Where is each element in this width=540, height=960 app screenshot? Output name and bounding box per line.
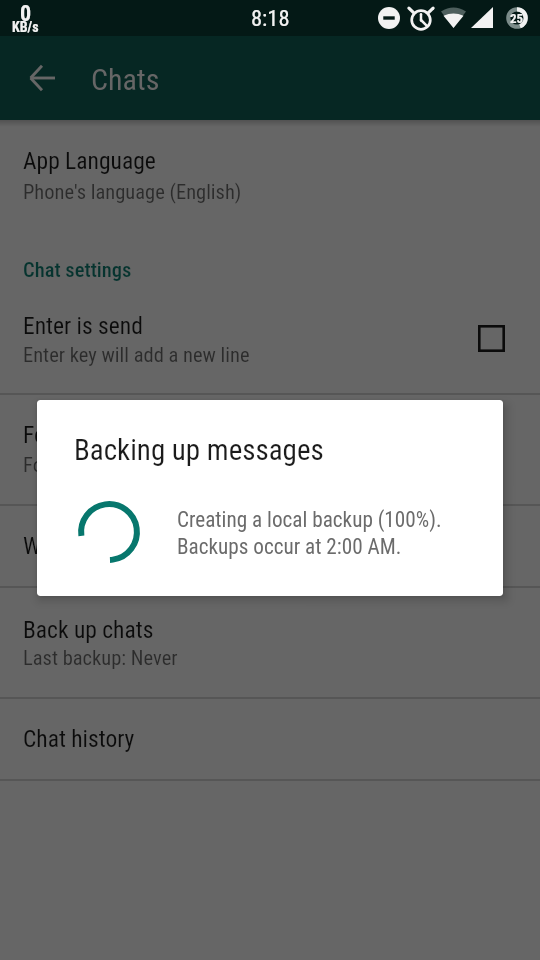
staticText: Backups occur at 2:00 AM. [177,534,402,559]
staticText: Fonts: Medium [23,453,144,477]
staticText: App Language [23,147,156,175]
staticText: Chats [91,62,160,97]
staticText: 0 [20,1,32,27]
staticText: 8:18 [251,5,290,31]
staticText: Backing up messages [74,433,324,467]
button[interactable]: App Language [0,120,540,220]
staticText: Phone's language (English) [23,180,242,204]
staticText: Chat history [23,725,135,753]
staticText: Enter is send [23,312,143,340]
button[interactable]: Back up chats [0,587,540,697]
staticText: Creating a local backup (100%). [177,507,442,532]
button[interactable]: Font size [0,394,540,504]
button[interactable]: Chat history [0,698,540,779]
staticText: Enter key will add a new line [23,343,250,367]
button[interactable]: Wallpaper [0,505,540,586]
button[interactable]: Enter is send [0,295,540,393]
staticText: Back up chats [23,616,154,644]
staticText: Wallpaper [23,532,116,560]
staticText: Last backup: Never [23,646,178,670]
staticText: Font size [23,421,107,449]
staticText: Chat settings [23,258,132,282]
staticText: 25 [510,11,524,26]
staticText: KB/s [12,19,39,35]
button[interactable]: Back [18,54,66,102]
